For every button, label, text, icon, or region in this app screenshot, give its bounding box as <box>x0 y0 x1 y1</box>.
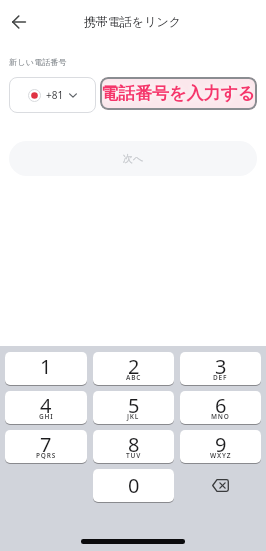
staticText: 新しい電話番号 <box>9 57 67 67</box>
button[interactable]: 6 <box>180 391 261 424</box>
staticText: 0 <box>128 472 140 499</box>
button[interactable]: 1 <box>5 352 87 385</box>
button[interactable] <box>180 469 261 502</box>
staticText: 4 <box>40 392 52 419</box>
button[interactable]: 8 <box>93 430 174 463</box>
button[interactable]: 2 <box>93 352 174 385</box>
staticText: +81 <box>46 88 64 102</box>
staticText: TUV <box>126 451 142 460</box>
staticText: 9 <box>215 431 227 458</box>
button[interactable] <box>6 9 32 35</box>
button[interactable]: 7 <box>5 430 87 463</box>
staticText: MNO <box>211 412 230 421</box>
staticText: GHI <box>39 412 54 421</box>
button[interactable]: 4 <box>5 391 87 424</box>
button[interactable]: 次へ <box>9 141 257 176</box>
staticText: 5 <box>128 392 140 419</box>
button[interactable]: 9 <box>180 430 261 463</box>
staticText: 次へ <box>123 152 144 165</box>
staticText: 電話番号を入力する <box>101 83 256 104</box>
staticText: DEF <box>213 373 228 382</box>
staticText: 6 <box>215 392 227 419</box>
staticText: 2 <box>128 353 140 380</box>
staticText: 7 <box>40 431 52 458</box>
button[interactable]: 5 <box>93 391 174 424</box>
staticText: PQRS <box>36 451 57 460</box>
button[interactable]: 0 <box>93 469 174 502</box>
staticText: 1 <box>40 353 52 380</box>
staticText: 携帯電話をリンク <box>84 14 182 29</box>
button[interactable]: +81 <box>9 77 96 113</box>
staticText: WXYZ <box>210 451 232 460</box>
staticText: ABC <box>126 373 142 382</box>
staticText: 8 <box>128 431 140 458</box>
staticText: JKL <box>127 412 140 421</box>
staticText: 3 <box>215 353 227 380</box>
button[interactable]: 3 <box>180 352 261 385</box>
